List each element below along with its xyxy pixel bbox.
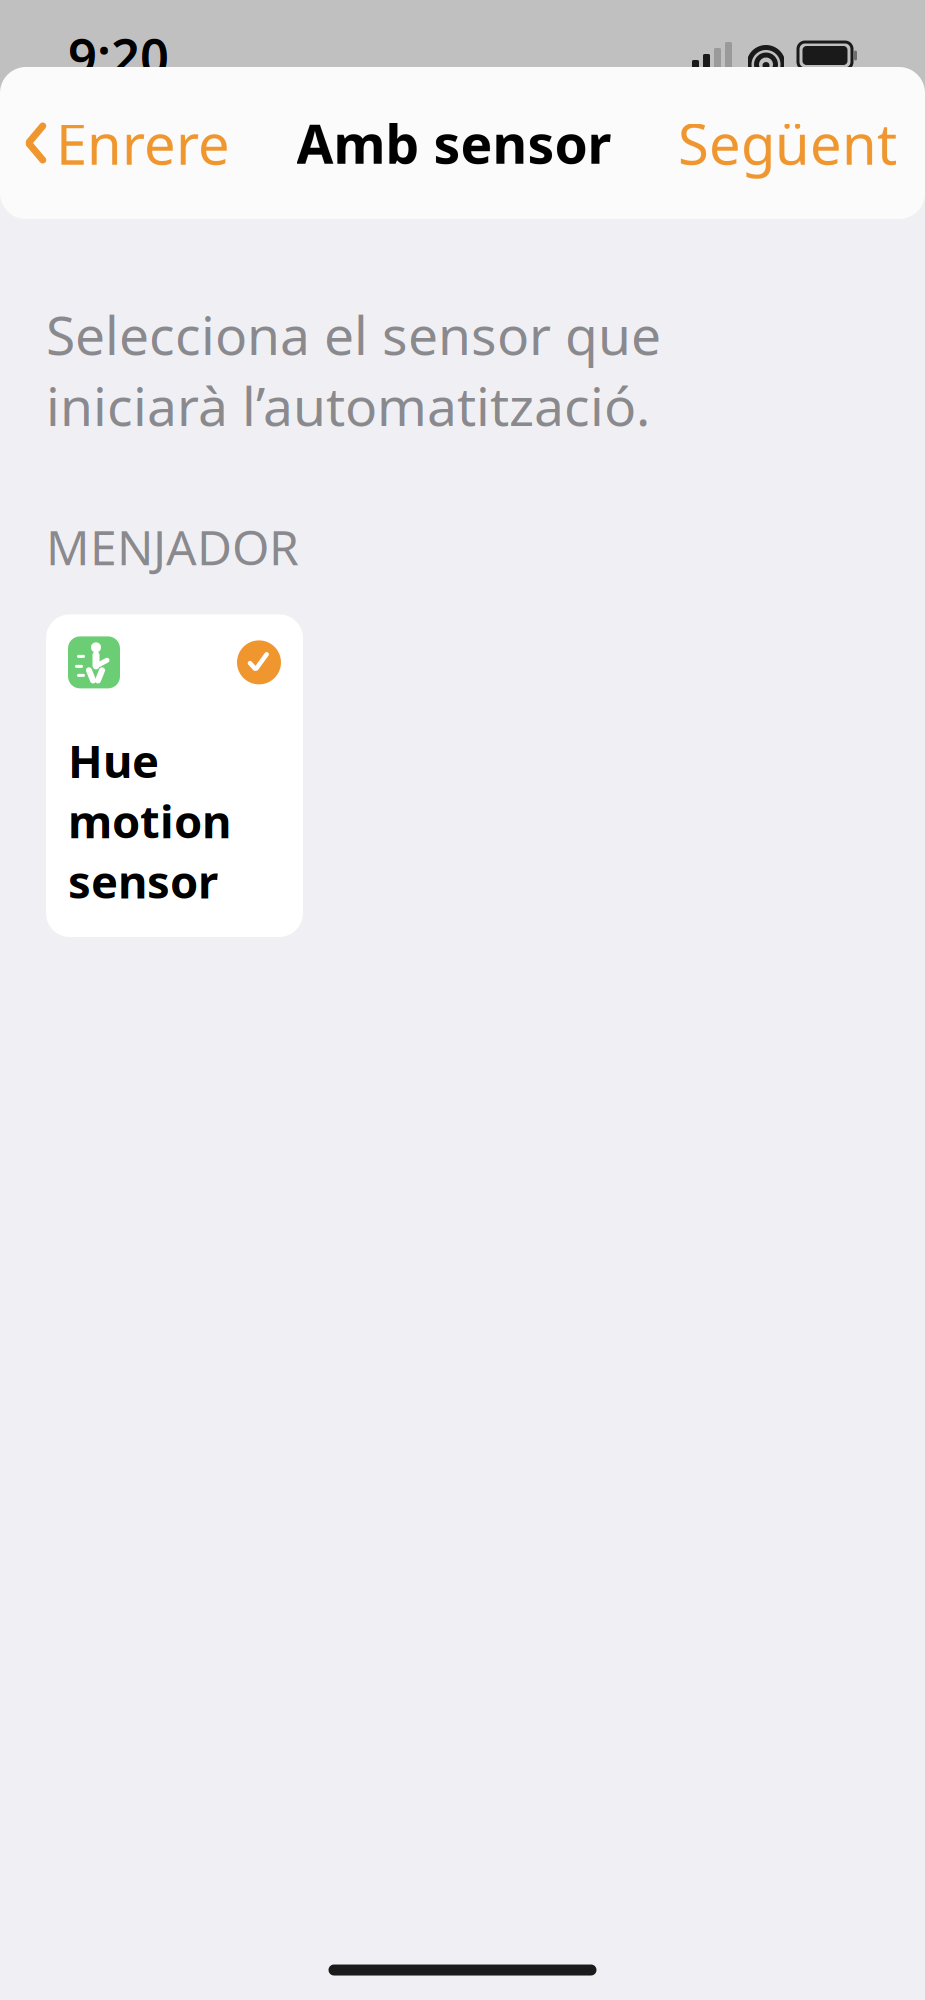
button[interactable]: Següent [678,92,925,194]
staticText: 9:20 [68,22,169,89]
staticText: Següent [678,106,897,180]
button[interactable]: Hue motion sensor [46,614,303,937]
staticText: Selecciona el sensor que iniciarà l’auto… [46,299,661,441]
staticText: Hue motion sensor [68,730,231,911]
staticText: MENJADOR [46,515,299,578]
staticText: Amb sensor [296,108,611,178]
staticText: Enrere [56,106,230,180]
button[interactable]: Enrere [0,92,230,194]
